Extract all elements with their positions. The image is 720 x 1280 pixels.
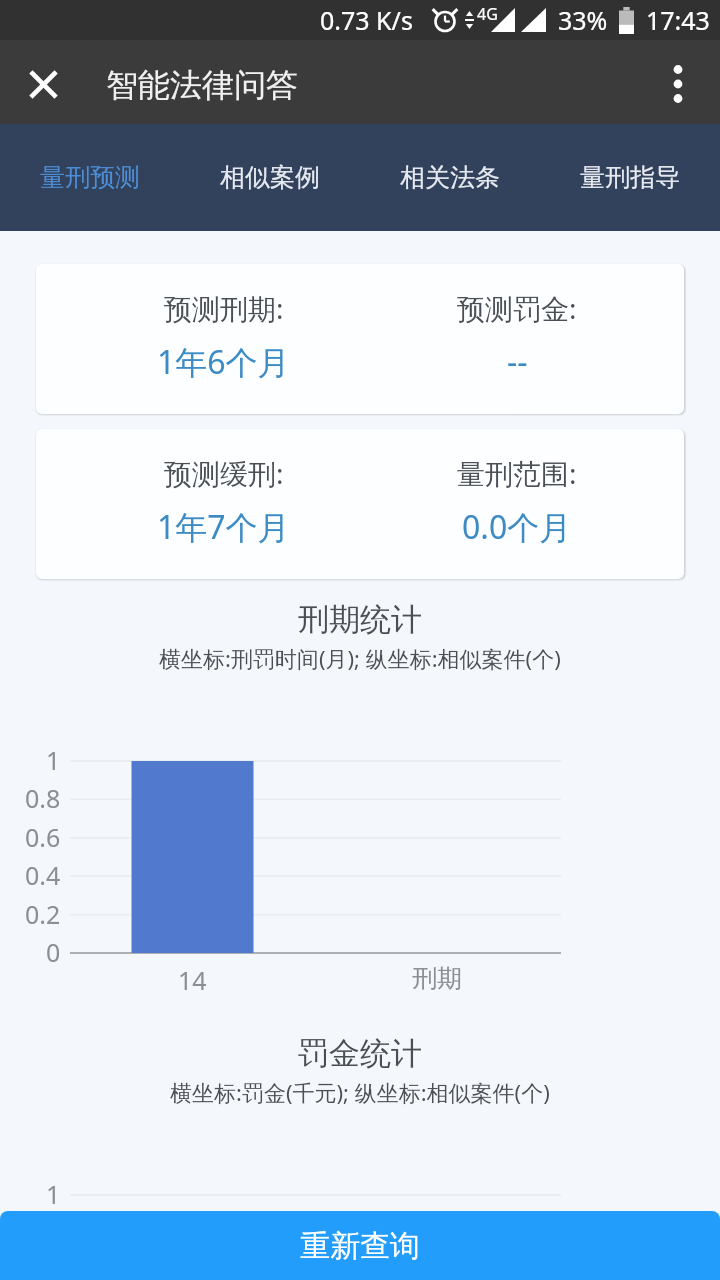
staticText: 1 <box>46 1177 61 1211</box>
staticText: 1 <box>46 743 61 777</box>
staticText: 预测罚金: <box>457 289 577 327</box>
staticText: 4G <box>477 3 498 25</box>
staticText: 0 <box>46 935 61 969</box>
staticText: 17:43 <box>646 3 710 37</box>
staticText: 预测缓刑: <box>164 454 284 492</box>
staticText: 0.4 <box>25 858 61 892</box>
staticText: 33% <box>558 3 608 37</box>
staticText: 0.6 <box>25 820 61 854</box>
staticText: 相关法条 <box>400 162 500 193</box>
staticText: 横坐标:刑罚时间(月); 纵坐标:相似案件(个) <box>159 643 561 673</box>
staticText: 量刑范围: <box>457 454 577 492</box>
staticText: 相似案例 <box>220 162 320 193</box>
button[interactable]: More options <box>648 54 704 110</box>
staticText: 14 <box>178 963 207 997</box>
staticText: 预测刑期: <box>164 289 284 327</box>
button[interactable]: 量刑预测 <box>0 124 180 231</box>
staticText: 智能法律问答 <box>106 65 298 105</box>
staticText: 罚金统计 <box>298 1034 422 1073</box>
staticText: 量刑预测 <box>40 162 140 193</box>
staticText: 1年7个月 <box>157 505 290 549</box>
button[interactable]: 相关法条 <box>360 124 540 231</box>
staticText: 0.8 <box>25 781 61 815</box>
staticText: 1年6个月 <box>157 340 290 384</box>
staticText: 0.2 <box>25 897 61 931</box>
staticText: -- <box>507 340 528 384</box>
staticText: 0.0个月 <box>462 505 572 549</box>
button[interactable]: 相似案例 <box>180 124 360 231</box>
button[interactable]: 重新查询 <box>0 1211 720 1280</box>
button[interactable]: Close <box>14 54 70 110</box>
button[interactable]: 量刑指导 <box>540 124 720 231</box>
staticText: 横坐标:罚金(千元); 纵坐标:相似案件(个) <box>170 1077 550 1107</box>
staticText: 刑期 <box>412 963 462 994</box>
staticText: 重新查询 <box>300 1227 420 1265</box>
staticText: 量刑指导 <box>580 162 680 193</box>
staticText: 0.73 K/s <box>320 3 413 37</box>
staticText: 刑期统计 <box>298 600 422 639</box>
